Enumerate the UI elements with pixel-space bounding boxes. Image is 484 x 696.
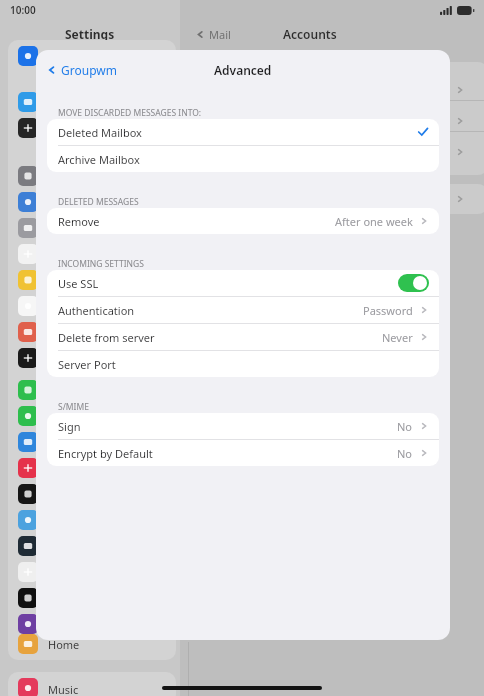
staticText: Accounts bbox=[283, 26, 337, 42]
staticText: Sign bbox=[58, 419, 81, 434]
staticText: Settings bbox=[65, 26, 115, 42]
button[interactable]: Archive Mailbox bbox=[47, 146, 439, 172]
staticText: Mail bbox=[209, 27, 231, 42]
staticText: MOVE DISCARDED MESSAGES INTO: bbox=[58, 107, 202, 119]
staticText: Password bbox=[363, 303, 413, 318]
staticText: Deleted Mailbox bbox=[58, 125, 142, 140]
button[interactable]: Use SSL toggle, on bbox=[398, 274, 429, 292]
button[interactable]: Use SSL bbox=[47, 270, 439, 296]
staticText: No bbox=[397, 446, 413, 461]
staticText: Authentication bbox=[58, 303, 135, 318]
button[interactable]: Delete from server bbox=[47, 324, 439, 350]
staticText: Remove bbox=[58, 214, 100, 229]
staticText: Groupwm bbox=[61, 62, 117, 78]
staticText: Home bbox=[48, 637, 80, 652]
staticText: S/MIME bbox=[58, 401, 89, 413]
staticText: After one week bbox=[335, 214, 413, 229]
button[interactable]: Sign bbox=[47, 413, 439, 439]
staticText: Music bbox=[48, 682, 79, 696]
button[interactable]: Authentication bbox=[47, 297, 439, 323]
staticText: Delete from server bbox=[58, 330, 155, 345]
staticText: 10:00 bbox=[10, 3, 36, 17]
staticText: Archive Mailbox bbox=[58, 152, 140, 167]
staticText: No bbox=[397, 419, 413, 434]
staticText: INCOMING SETTINGS bbox=[58, 258, 144, 270]
button[interactable]: Server Port bbox=[47, 351, 439, 377]
staticText: Never bbox=[382, 330, 413, 345]
button[interactable]: Groupwm bbox=[42, 57, 121, 83]
staticText: DELETED MESSAGES bbox=[58, 196, 139, 208]
button[interactable]: Encrypt by Default bbox=[47, 440, 439, 466]
staticText: Use SSL bbox=[58, 276, 99, 291]
staticText: Server Port bbox=[58, 357, 116, 372]
button[interactable]: Deleted Mailbox bbox=[47, 119, 439, 145]
button[interactable]: Remove bbox=[47, 208, 439, 234]
staticText: Encrypt by Default bbox=[58, 446, 153, 461]
staticText: Advanced bbox=[214, 62, 272, 78]
